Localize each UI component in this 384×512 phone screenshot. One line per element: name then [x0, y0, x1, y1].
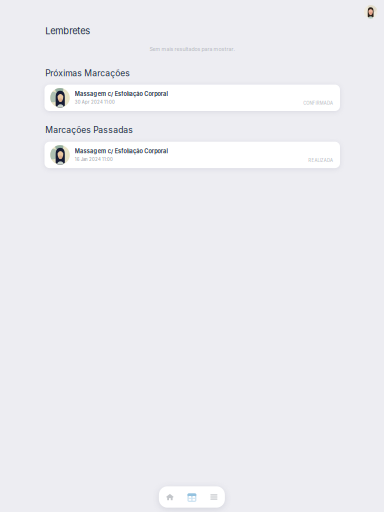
button[interactable]: Profile	[0, 0, 384, 19]
button[interactable]: Appointments	[181, 486, 203, 508]
button[interactable]: Menu	[203, 486, 225, 508]
staticText: Massagem c/ Esfoliação Corporal	[75, 148, 167, 155]
staticText: CONFIRMADA	[303, 101, 333, 106]
staticText: Sem mais resultados para mostrar.	[149, 46, 234, 52]
staticText: REALIZADA	[308, 158, 333, 163]
button[interactable]: Home	[159, 486, 181, 508]
button[interactable]: Massagem c/ Esfoliação Corporal	[44, 142, 340, 168]
button[interactable]: Massagem c/ Esfoliação Corporal	[44, 85, 340, 111]
staticText: Lembretes	[45, 25, 90, 37]
staticText: Próximas Marcações	[45, 68, 130, 78]
staticText: Massagem c/ Esfoliação Corporal	[75, 91, 167, 97]
staticText: 16 Jan 2024 11:00	[75, 157, 113, 162]
staticText: 30 Apr 2024 11:00	[75, 100, 115, 105]
staticText: Marcações Passadas	[45, 125, 133, 135]
